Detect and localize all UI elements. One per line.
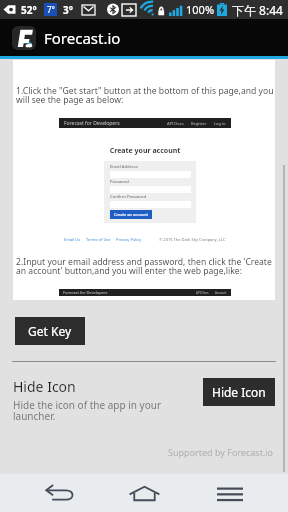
staticText: 7° xyxy=(47,4,55,15)
staticText: Hide the icon of the app in your launche… xyxy=(13,398,203,423)
staticText: Confirm Password xyxy=(110,194,146,200)
button[interactable]: Back xyxy=(0,474,96,512)
staticText: Email Address xyxy=(110,164,138,170)
staticText: 2.Input your email address and password,… xyxy=(16,256,275,277)
staticText: API Docs xyxy=(167,121,184,126)
button[interactable]: Hide Icon xyxy=(203,378,275,406)
staticText: Register xyxy=(191,121,207,126)
staticText: 100% xyxy=(186,2,215,17)
staticText: Hide Icon xyxy=(212,384,266,400)
staticText: Password xyxy=(110,179,129,185)
staticText: Forecast.io xyxy=(44,28,121,48)
staticText: 下午 8:44 xyxy=(232,2,283,18)
staticText: Account xyxy=(215,291,227,295)
staticText: Forecast for Developers xyxy=(64,120,120,127)
staticText: Hide Icon xyxy=(13,377,76,396)
staticText: Create an account xyxy=(114,212,148,217)
staticText: Forecast for Developers xyxy=(63,290,108,295)
staticText: Get Key xyxy=(28,323,72,339)
button[interactable]: Get Key xyxy=(15,317,85,345)
staticText: © 2015 The Dark Sky Company, LLC xyxy=(159,237,226,242)
staticText: Supported by Forecast.io xyxy=(168,446,274,458)
staticText: Create your account xyxy=(59,146,231,156)
staticText: API Docs xyxy=(196,291,209,295)
staticText: Terms of Use xyxy=(86,237,111,242)
staticText: 1.Click the "Get start" button at the bo… xyxy=(16,85,275,106)
staticText: Privacy Policy xyxy=(116,237,142,242)
staticText: Log in xyxy=(214,121,226,126)
button[interactable]: Home xyxy=(96,474,192,512)
staticText: 3° xyxy=(63,3,73,17)
staticText: 52° xyxy=(21,3,37,17)
staticText: Email Us xyxy=(64,237,81,242)
button[interactable]: Recent apps xyxy=(192,474,288,512)
